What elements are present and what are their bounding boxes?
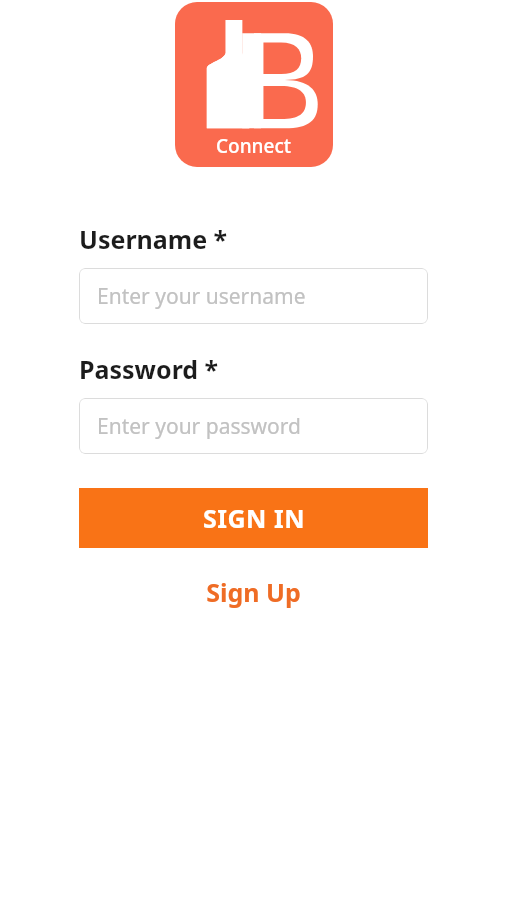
staticText: Enter your password [97,412,301,441]
button[interactable]: Password input field [79,398,428,454]
staticText: Username * [79,222,228,256]
button[interactable]: Sign Up [79,570,428,614]
staticText: SIGN IN [203,501,305,535]
staticText: Password * [79,352,219,386]
staticText: Connect [216,133,292,159]
staticText: Enter your username [97,282,306,311]
staticText: Sign Up [206,575,301,609]
button[interactable]: Username input field [79,268,428,324]
button[interactable]: SIGN IN [79,488,428,548]
